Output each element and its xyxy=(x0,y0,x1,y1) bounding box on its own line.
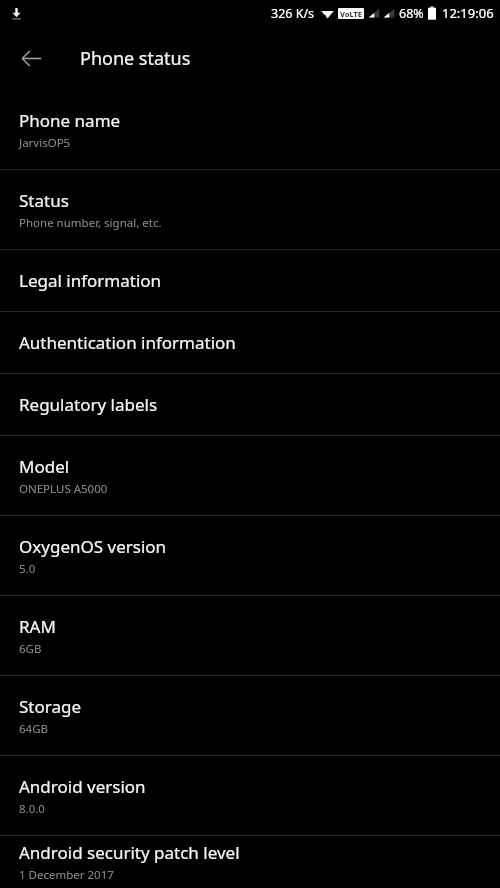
button[interactable]: Legal information xyxy=(0,250,500,311)
staticText: 326 K/s xyxy=(271,5,315,22)
staticText: 1 December 2017 xyxy=(19,867,114,883)
button[interactable]: Status xyxy=(0,170,500,249)
staticText: 8.0.0 xyxy=(19,801,45,817)
staticText: RAM xyxy=(19,615,56,638)
staticText: Android version xyxy=(19,775,146,798)
staticText: 6GB xyxy=(19,641,42,657)
staticText: Android security patch level xyxy=(19,841,240,864)
staticText: ONEPLUS A5000 xyxy=(19,481,108,497)
button[interactable]: Authentication information xyxy=(0,312,500,373)
staticText: Phone name xyxy=(19,109,121,132)
button[interactable]: Phone name xyxy=(0,90,500,169)
button[interactable]: Android version xyxy=(0,756,500,835)
button[interactable]: Android security patch level xyxy=(0,836,500,888)
staticText: Phone number, signal, etc. xyxy=(19,215,162,231)
button[interactable]: Regulatory labels xyxy=(0,374,500,435)
staticText: VoLTE xyxy=(340,9,362,19)
staticText: Status xyxy=(19,189,69,212)
staticText: Storage xyxy=(19,695,82,718)
staticText: 12:19:06 xyxy=(442,4,494,22)
staticText: JarvisOP5 xyxy=(19,135,71,151)
staticText: Model xyxy=(19,455,70,478)
staticText: OxygenOS version xyxy=(19,535,167,558)
button[interactable]: RAM xyxy=(0,596,500,675)
staticText: Regulatory labels xyxy=(19,393,158,416)
staticText: 68% xyxy=(399,5,424,22)
staticText: Legal information xyxy=(19,269,162,292)
staticText: 64GB xyxy=(19,721,49,737)
staticText: 5.0 xyxy=(19,561,36,577)
staticText: Phone status xyxy=(80,46,191,71)
button[interactable]: Back xyxy=(8,35,54,81)
button[interactable]: OxygenOS version xyxy=(0,516,500,595)
button[interactable]: Model xyxy=(0,436,500,515)
staticText: Authentication information xyxy=(19,331,236,354)
button[interactable]: Storage xyxy=(0,676,500,755)
